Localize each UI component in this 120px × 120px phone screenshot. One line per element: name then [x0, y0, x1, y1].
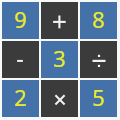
staticText: 2 — [14, 82, 27, 112]
staticText: 5 — [92, 82, 105, 112]
button[interactable]: Subtract — [2, 41, 39, 78]
button[interactable]: 9 — [2, 2, 39, 39]
staticText: 9 — [14, 4, 27, 34]
staticText: 3 — [53, 43, 66, 73]
button[interactable]: Add — [41, 2, 78, 39]
button[interactable]: 5 — [80, 80, 117, 117]
button[interactable]: Multiply — [41, 80, 78, 117]
button[interactable]: 3 — [41, 41, 78, 78]
button[interactable]: Divide — [80, 41, 117, 78]
button[interactable]: 2 — [2, 80, 39, 117]
button[interactable]: 8 — [80, 2, 117, 39]
staticText: 8 — [92, 4, 105, 34]
